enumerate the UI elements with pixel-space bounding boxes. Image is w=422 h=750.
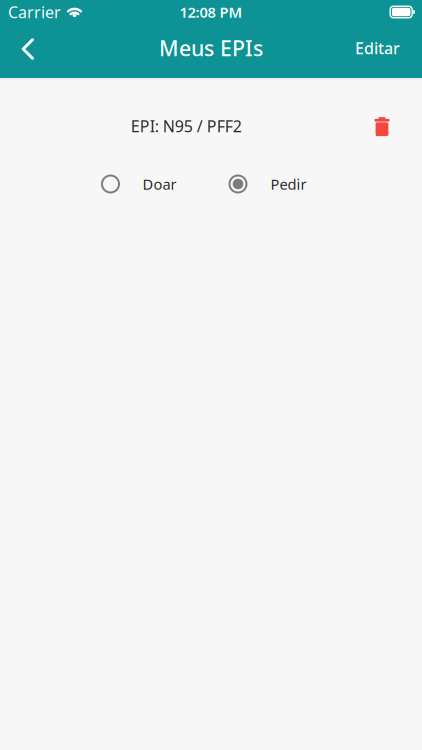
staticText: Carrier [8, 1, 61, 23]
staticText: 12:08 PM [179, 2, 242, 22]
button[interactable]: Delete [362, 108, 402, 139]
staticText: Editar [355, 37, 400, 59]
button[interactable]: Back [0, 29, 51, 73]
button[interactable]: Doar [101, 168, 176, 200]
staticText: EPI: N95 / PFF2 [131, 115, 242, 137]
staticText: Pedir [270, 174, 306, 194]
button[interactable]: Editar [339, 29, 422, 73]
button[interactable]: Pedir [228, 168, 306, 200]
staticText: Doar [142, 174, 176, 194]
staticText: Meus EPIs [159, 34, 263, 62]
